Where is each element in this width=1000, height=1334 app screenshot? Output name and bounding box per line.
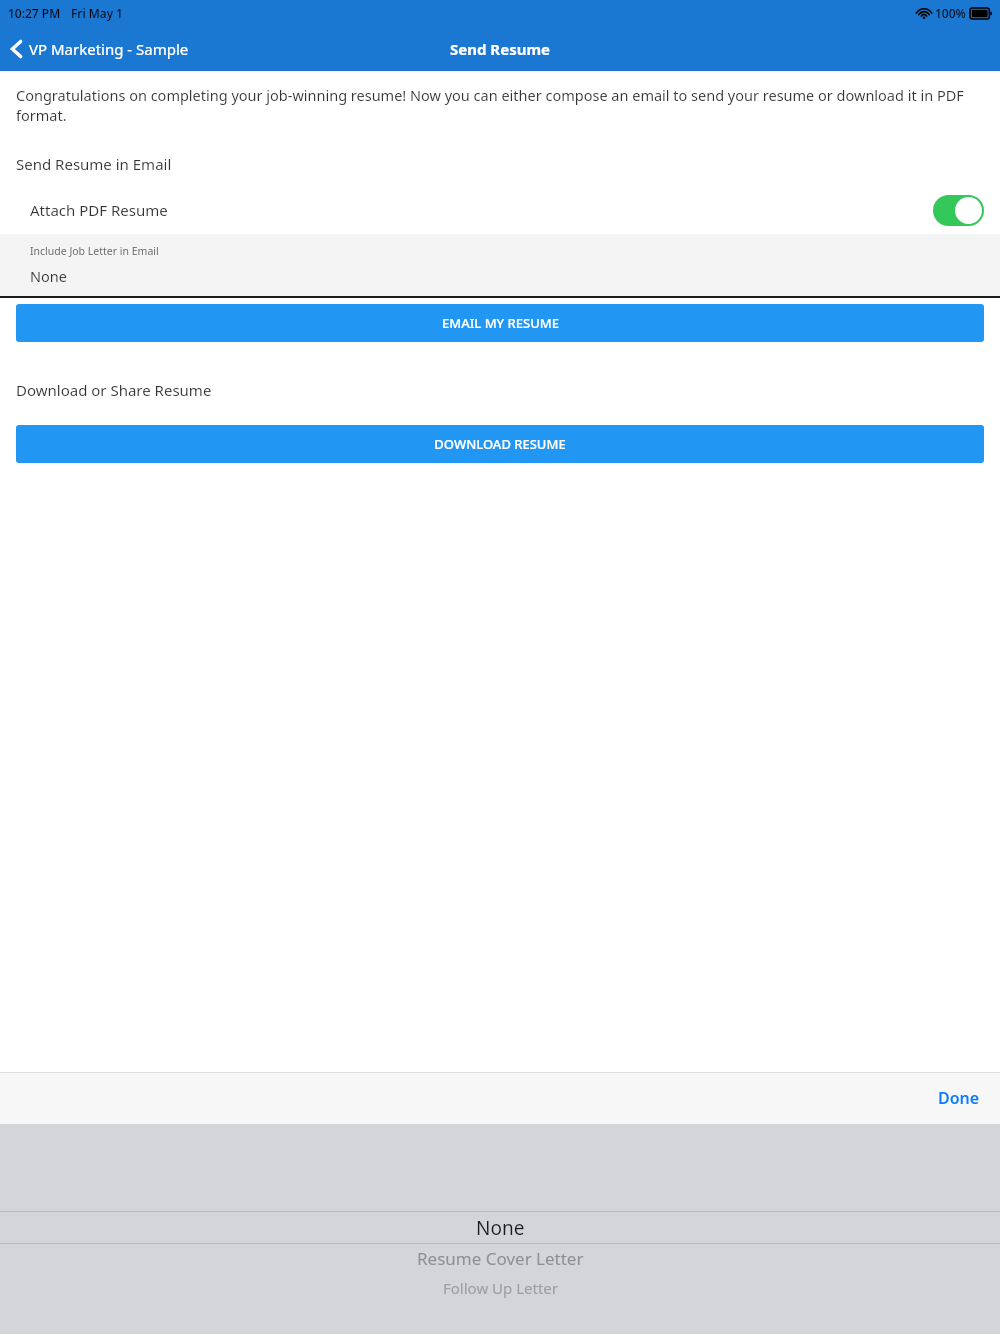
staticText: Include Job Letter in Email [30, 244, 159, 258]
button[interactable]: Include Job Letter in Email [0, 234, 1000, 298]
button[interactable]: Follow Up Letter [0, 1274, 1000, 1302]
staticText: Resume Cover Letter [417, 1247, 584, 1270]
staticText: Send Resume in Email [16, 154, 172, 174]
other: Attach PDF Resume toggle [933, 195, 984, 226]
staticText: Follow Up Letter [443, 1278, 558, 1298]
staticText: 10:27 PM [8, 5, 61, 21]
staticText: Congratulations on completing your job-w… [16, 85, 984, 126]
staticText: DOWNLOAD RESUME [434, 435, 566, 453]
staticText: Fri May 1 [71, 5, 123, 21]
button[interactable]: VP Marketing - Sample [0, 33, 201, 65]
staticText: EMAIL MY RESUME [442, 314, 559, 332]
button[interactable]: None [0, 1212, 1000, 1243]
staticText: Done [938, 1087, 980, 1109]
button[interactable]: Attach PDF Resume [0, 192, 1000, 228]
staticText: None [30, 266, 67, 286]
staticText: Send Resume [450, 39, 551, 59]
staticText: Attach PDF Resume [30, 200, 168, 220]
button[interactable]: Resume Cover Letter [0, 1243, 1000, 1274]
staticText: None [476, 1215, 525, 1241]
button[interactable]: DOWNLOAD RESUME [16, 425, 984, 463]
staticText: 100% [935, 5, 966, 21]
staticText: Download or Share Resume [16, 380, 212, 400]
button[interactable]: EMAIL MY RESUME [16, 304, 984, 342]
button[interactable]: Done [918, 1077, 1000, 1119]
staticText: VP Marketing - Sample [29, 39, 189, 59]
